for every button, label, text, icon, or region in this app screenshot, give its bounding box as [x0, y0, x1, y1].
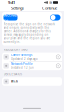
staticText: DEVICE STATUS [3, 72, 21, 76]
button[interactable]: Network Profile [2, 61, 62, 70]
staticText: REGULATORY INFO [3, 48, 27, 51]
staticText: Continue [42, 5, 57, 11]
staticText: ≋ [49, 0, 52, 5]
staticText: 9:41 [8, 0, 15, 5]
staticText: Network Profile [11, 62, 33, 66]
button[interactable]: Settings [11, 5, 24, 11]
staticText: Installed 12 Jun [11, 66, 34, 69]
staticText: Recognise the sign on the network and en… [3, 22, 54, 44]
staticText: Carrier Settings [11, 53, 32, 57]
button[interactable]: Continue [42, 5, 57, 11]
staticText: Activate [4, 12, 17, 23]
staticText: Wi-Fi [11, 80, 18, 83]
button[interactable]: Activate [3, 14, 17, 20]
staticText: Settings [11, 5, 24, 11]
staticText: Updated 2 days ago [11, 57, 38, 61]
button[interactable]: Carrier Settings [2, 53, 62, 61]
button[interactable]: More Info [56, 55, 60, 59]
button[interactable]: Toggle [50, 14, 60, 20]
button[interactable]: More Info [56, 63, 60, 68]
button[interactable]: Wi-Fi [2, 77, 62, 86]
